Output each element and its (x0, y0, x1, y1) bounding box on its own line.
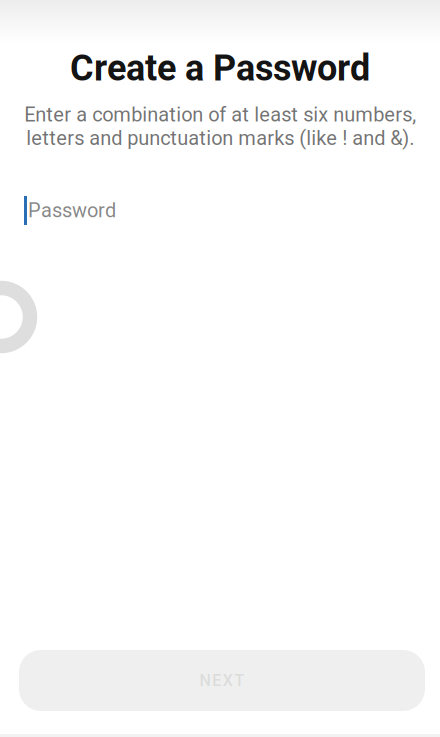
staticText: Create a Password (70, 47, 370, 89)
button[interactable]: Password (24, 196, 116, 225)
staticText: Enter a combination of at least six numb… (24, 103, 416, 150)
staticText: NEXT (200, 671, 244, 690)
staticText: Password (28, 199, 116, 222)
